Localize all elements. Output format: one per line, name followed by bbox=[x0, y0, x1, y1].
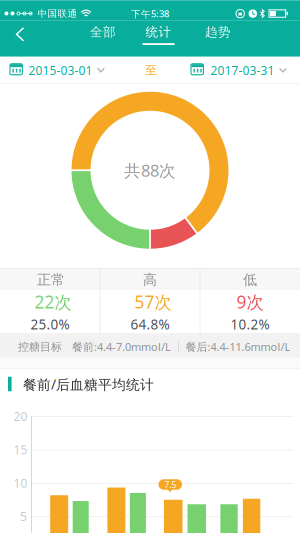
button[interactable]: 全部 bbox=[73, 19, 133, 55]
staticText: 低 bbox=[243, 271, 257, 288]
staticText: 高 bbox=[143, 271, 157, 288]
staticText: 餐后:4.4-11.6mmol/L bbox=[185, 339, 290, 354]
staticText: 统计 bbox=[145, 24, 171, 40]
button[interactable]: 2015-03-01 bbox=[0, 57, 110, 84]
staticText: 共88次 bbox=[124, 159, 176, 181]
staticText: 2017-03-31 bbox=[210, 62, 274, 78]
staticText: 10 bbox=[13, 475, 27, 491]
staticText: 下午5:38 bbox=[131, 7, 169, 20]
staticText: 25.0% bbox=[30, 315, 69, 333]
button[interactable]: 统计 bbox=[128, 19, 188, 55]
staticText: 5 bbox=[20, 508, 27, 525]
staticText: 10.2% bbox=[230, 315, 269, 333]
button[interactable] bbox=[0, 20, 36, 57]
staticText: 64.8% bbox=[130, 315, 169, 333]
staticText: 7.5 bbox=[164, 478, 176, 491]
staticText: 正常 bbox=[37, 271, 65, 288]
staticText: 全部 bbox=[90, 24, 116, 40]
staticText: 中国联通 bbox=[37, 8, 77, 20]
staticText: 57次 bbox=[134, 290, 171, 313]
staticText: 9次 bbox=[236, 290, 263, 313]
staticText: 22次 bbox=[34, 290, 71, 313]
button[interactable]: 2017-03-31 bbox=[181, 57, 291, 84]
staticText: 餐前/后血糖平均统计 bbox=[23, 375, 154, 394]
staticText: 趋势 bbox=[205, 24, 231, 40]
button[interactable]: 趋势 bbox=[188, 19, 248, 55]
staticText: 控糖目标 bbox=[18, 340, 62, 354]
staticText: 餐前:4.4-7.0mmol/L bbox=[72, 339, 171, 354]
staticText: 2015-03-01 bbox=[28, 62, 92, 78]
staticText: 20 bbox=[13, 408, 27, 424]
staticText: 至 bbox=[145, 63, 157, 78]
staticText: 15 bbox=[13, 441, 27, 458]
